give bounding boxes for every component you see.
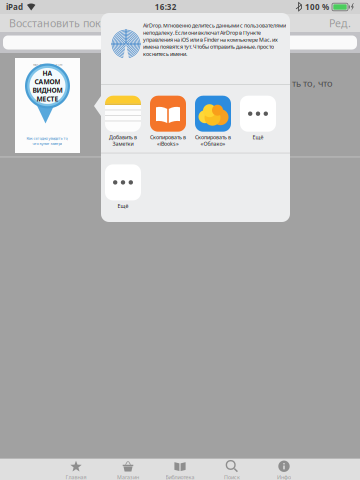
staticText: МЕСТЕ bbox=[36, 94, 58, 103]
button[interactable]: Добавить в bbox=[100, 96, 145, 149]
button[interactable]: Ещё bbox=[235, 96, 280, 149]
button[interactable]: Главная bbox=[50, 460, 102, 480]
staticText: Поиск bbox=[224, 474, 240, 480]
button[interactable] bbox=[0, 35, 360, 49]
button[interactable]: Ещё bbox=[100, 164, 145, 217]
staticText: Добавить в bbox=[109, 134, 137, 141]
staticText: Как сегодня увидеть то, bbox=[26, 135, 68, 141]
button[interactable]: Скопировать в bbox=[145, 96, 190, 149]
staticText: Скопировать в bbox=[150, 134, 186, 141]
staticText: Главная bbox=[65, 474, 86, 480]
staticText: МАРТИН ЛИНДСТРОМ bbox=[33, 63, 62, 66]
staticText: «Облако» bbox=[200, 140, 225, 147]
staticText: AirDrop. Мгновенно делитесь данными с по… bbox=[143, 22, 286, 57]
staticText: что купят завтра bbox=[32, 141, 62, 146]
staticText: Заметки bbox=[112, 140, 133, 147]
staticText: Ред. bbox=[329, 16, 351, 30]
staticText: Магазин bbox=[117, 474, 139, 480]
staticText: 16:32 bbox=[155, 2, 177, 12]
staticText: Инфо bbox=[277, 474, 291, 480]
staticText: ть то, что bbox=[292, 77, 333, 89]
button[interactable]: Скопировать в bbox=[190, 96, 235, 149]
button[interactable]: Ред. bbox=[329, 14, 351, 32]
staticText: Ещё bbox=[252, 134, 263, 141]
staticText: Библиотека bbox=[165, 474, 194, 480]
staticText: Восстановить покупки bbox=[9, 16, 125, 30]
staticText: НА bbox=[42, 69, 52, 78]
button[interactable]: Инфо bbox=[258, 460, 310, 480]
staticText: САМОМ bbox=[34, 77, 60, 86]
button[interactable]: Поиск bbox=[206, 460, 258, 480]
staticText: Ещё bbox=[117, 202, 128, 209]
staticText: 100 % bbox=[305, 2, 329, 12]
staticText: ВИДНОМ bbox=[32, 86, 62, 95]
button[interactable]: Магазин bbox=[102, 460, 154, 480]
staticText: Скопировать в bbox=[195, 134, 231, 141]
staticText: iPad bbox=[6, 2, 23, 12]
button[interactable]: Библиотека bbox=[154, 460, 206, 480]
staticText: «iBooks» bbox=[157, 140, 179, 147]
button[interactable]: Восстановить покупки bbox=[9, 14, 125, 32]
